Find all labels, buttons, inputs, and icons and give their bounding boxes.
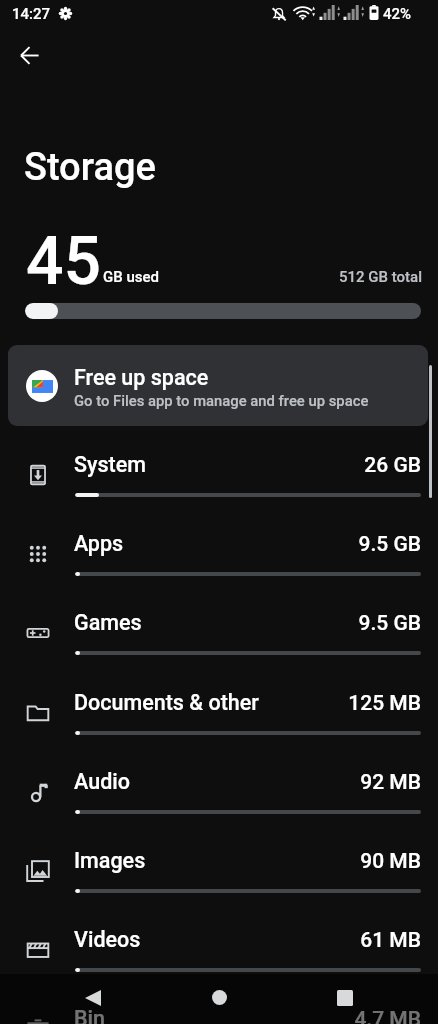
staticText: Bin	[74, 1006, 106, 1024]
staticText: GB used	[103, 268, 160, 286]
button[interactable]: Games	[0, 594, 438, 673]
staticText: 42%	[383, 5, 412, 23]
staticText: 512 GB total	[242, 268, 422, 286]
staticText: Apps	[74, 531, 124, 556]
staticText: Images	[74, 848, 146, 873]
staticText: Documents & other	[74, 690, 259, 715]
button[interactable]: Back	[1, 27, 57, 83]
staticText: Free up space	[74, 365, 209, 390]
button[interactable]: Audio	[0, 753, 438, 832]
staticText: Videos	[74, 927, 141, 952]
staticText: 4.7 MB	[221, 1007, 421, 1024]
staticText: 26 GB	[221, 453, 421, 478]
staticText: 90 MB	[221, 849, 421, 874]
staticText: 45	[26, 223, 102, 300]
staticText: 9.5 GB	[221, 611, 421, 636]
staticText: Audio	[74, 769, 131, 794]
button[interactable]: System	[0, 436, 438, 515]
button[interactable]: Images	[0, 832, 438, 911]
button[interactable]: Apps	[0, 515, 438, 594]
button[interactable]: Bin	[0, 990, 438, 1024]
button[interactable]: Back	[85, 990, 101, 1006]
staticText: 92 MB	[221, 770, 421, 795]
staticText: 14:27	[12, 5, 51, 23]
button[interactable]: Recent apps	[337, 990, 353, 1006]
button[interactable]: Documents & other	[0, 674, 438, 753]
staticText: Go to Files app to manage and free up sp…	[74, 392, 369, 409]
staticText: Games	[74, 610, 142, 635]
staticText: 125 MB	[221, 691, 421, 716]
button[interactable]: Videos	[0, 911, 438, 990]
button[interactable]: Free up space	[8, 345, 428, 426]
staticText: Storage	[24, 145, 156, 190]
staticText: System	[74, 452, 146, 477]
staticText: 61 MB	[221, 928, 421, 953]
staticText: 9.5 GB	[221, 532, 421, 557]
button[interactable]: Home	[212, 990, 227, 1005]
